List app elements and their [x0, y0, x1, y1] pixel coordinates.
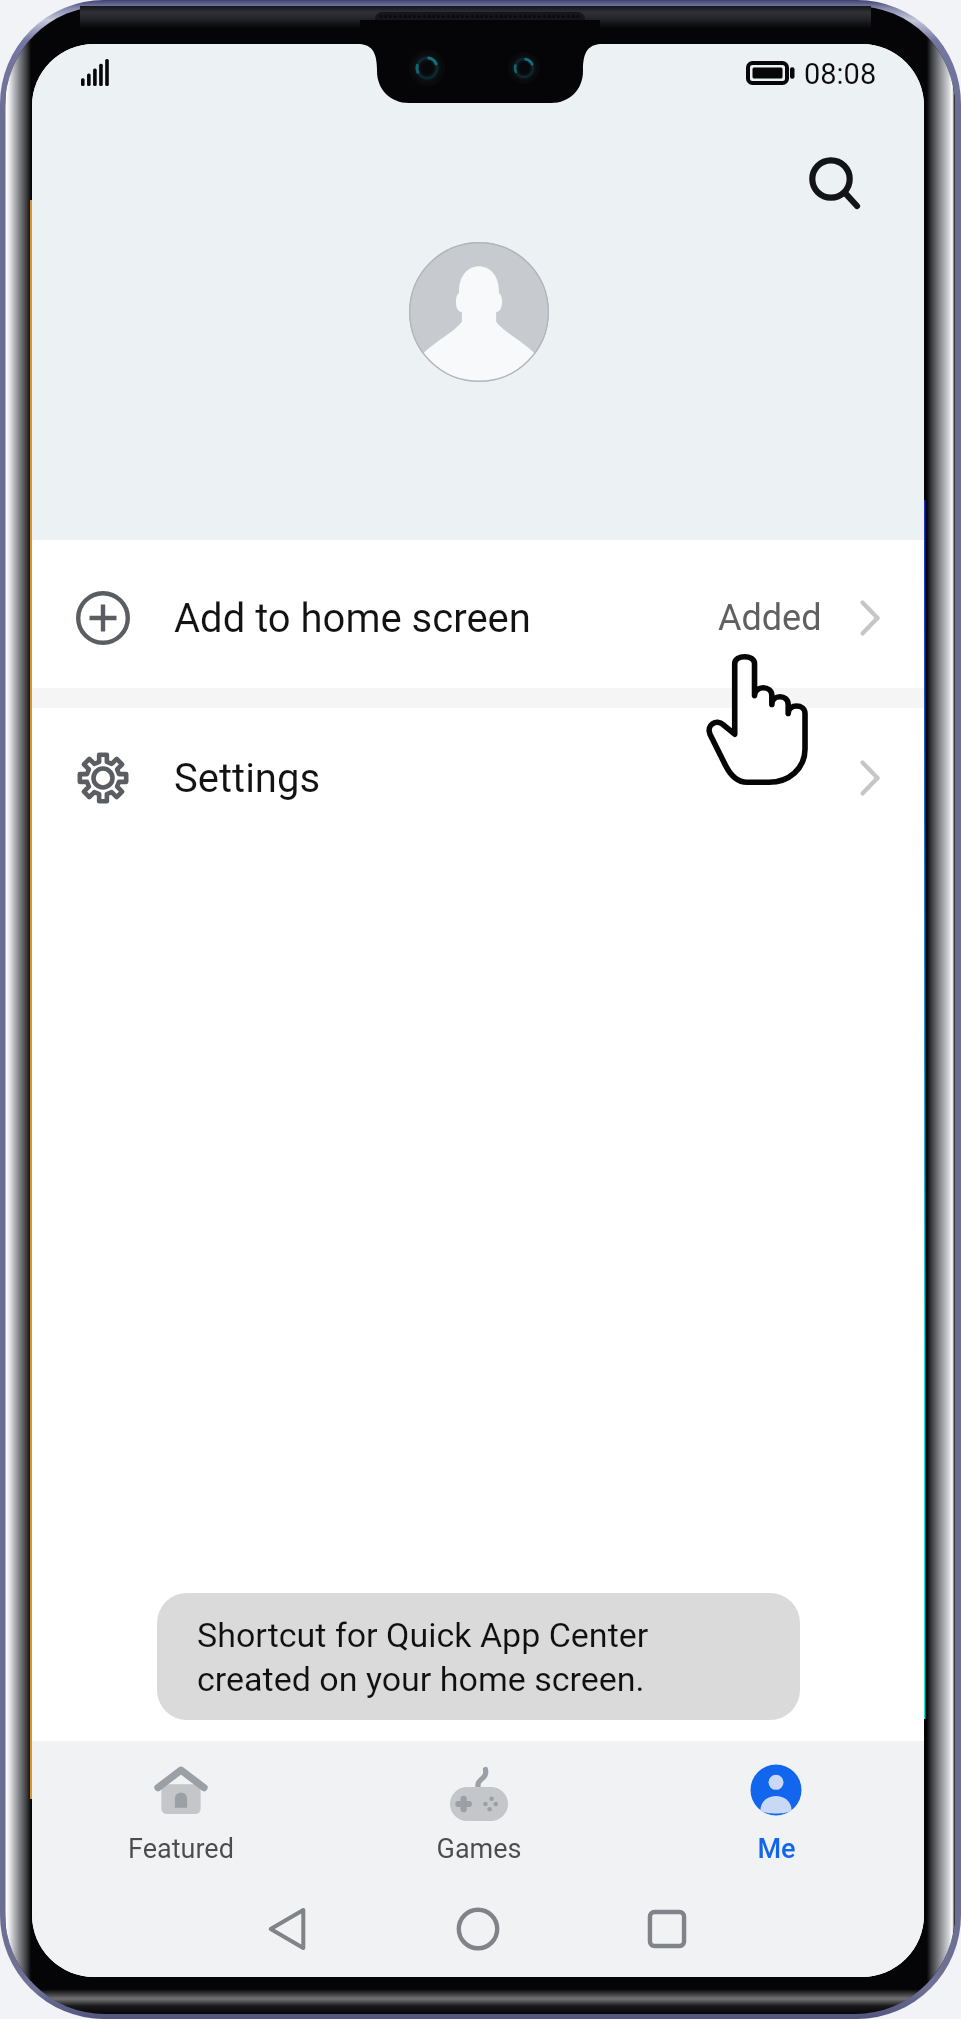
button[interactable]: Home — [430, 1881, 526, 1977]
staticText: 08:08 — [804, 57, 877, 91]
staticText: Me — [757, 1833, 796, 1865]
staticText: Settings — [174, 755, 321, 802]
staticText: Added — [718, 597, 822, 639]
button[interactable]: Recents — [619, 1881, 715, 1977]
staticText: Add to home screen — [174, 595, 531, 642]
staticText: Shortcut for Quick App Center created on… — [197, 1615, 649, 1699]
button[interactable]: Back — [239, 1881, 335, 1977]
button[interactable]: Add to home screen — [32, 540, 924, 688]
button[interactable]: Profile picture — [409, 242, 549, 382]
button[interactable]: Settings — [32, 708, 924, 856]
button[interactable]: Games — [379, 1741, 579, 1891]
button[interactable]: Featured — [81, 1741, 281, 1891]
button[interactable]: Me — [676, 1741, 876, 1891]
staticText: Games — [436, 1833, 522, 1865]
button[interactable]: Search — [792, 143, 868, 219]
staticText: Featured — [128, 1833, 234, 1865]
